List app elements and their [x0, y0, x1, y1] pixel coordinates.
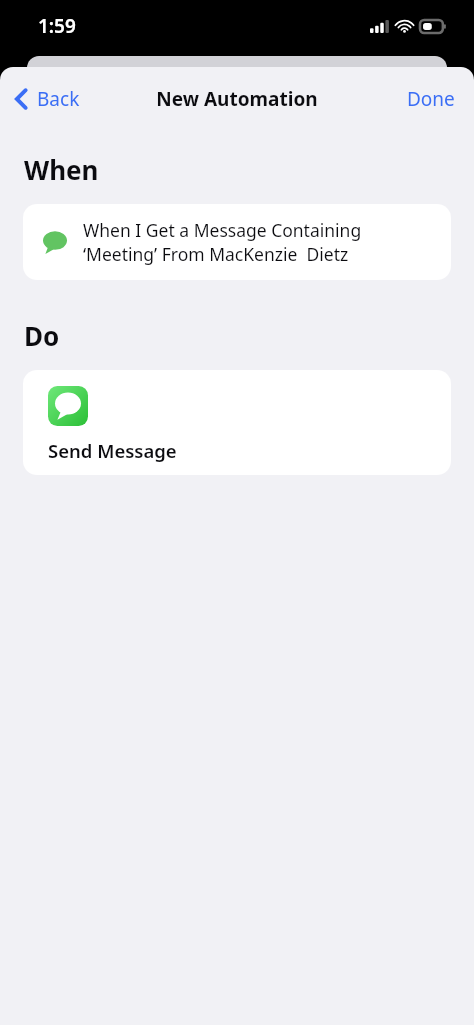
button[interactable]: When I Get a Message Containing	[23, 204, 451, 280]
staticText: Do	[24, 318, 60, 353]
staticText: ‘Meeting’ From MacKenzie Dietz	[83, 242, 349, 266]
staticText: Send Message	[48, 438, 177, 463]
staticText: Done	[407, 86, 455, 112]
staticText: When	[24, 152, 99, 187]
staticText: New Automation	[156, 86, 318, 112]
staticText: Back	[37, 86, 80, 112]
button[interactable]: Back	[10, 80, 85, 118]
staticText: When I Get a Message Containing	[83, 218, 362, 242]
button[interactable]: Send Message	[23, 370, 451, 475]
staticText: 1:59	[38, 13, 76, 39]
button[interactable]: Done	[401, 80, 461, 118]
